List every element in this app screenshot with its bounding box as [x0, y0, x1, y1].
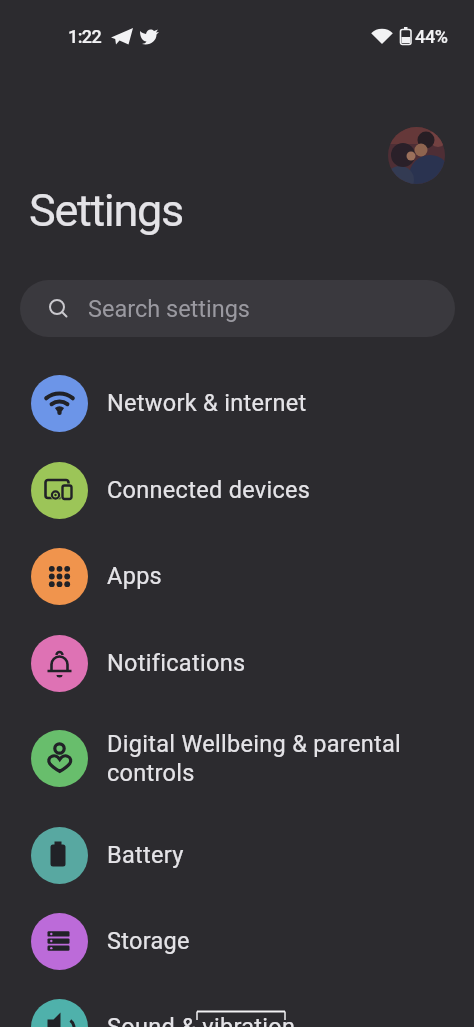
staticText: Storage: [107, 927, 190, 955]
staticText: 44%: [415, 26, 448, 47]
staticText: Network & internet: [107, 389, 307, 417]
button[interactable]: Apps: [0, 533, 474, 619]
button[interactable]: [388, 127, 445, 184]
staticText: Sound & vibration: [107, 1013, 296, 1027]
staticText: Digital Wellbeing & parental controls: [107, 730, 402, 786]
button[interactable]: Network & internet: [0, 360, 474, 446]
button[interactable]: Battery: [0, 812, 474, 898]
button[interactable]: Storage: [0, 898, 474, 984]
staticText: Settings: [29, 184, 183, 237]
button[interactable]: Connected devices: [0, 447, 474, 533]
staticText: Apps: [107, 562, 163, 590]
button[interactable]: Notifications: [0, 620, 474, 706]
staticText: Search settings: [88, 295, 250, 323]
staticText: Connected devices: [107, 476, 311, 504]
button[interactable]: Sound & vibration: [0, 984, 474, 1027]
staticText: Notifications: [107, 649, 246, 677]
staticText: Battery: [107, 841, 184, 869]
button[interactable]: Search settings: [20, 280, 455, 337]
staticText: 1:22: [68, 26, 102, 47]
button[interactable]: Digital Wellbeing & parental controls: [0, 708, 474, 808]
